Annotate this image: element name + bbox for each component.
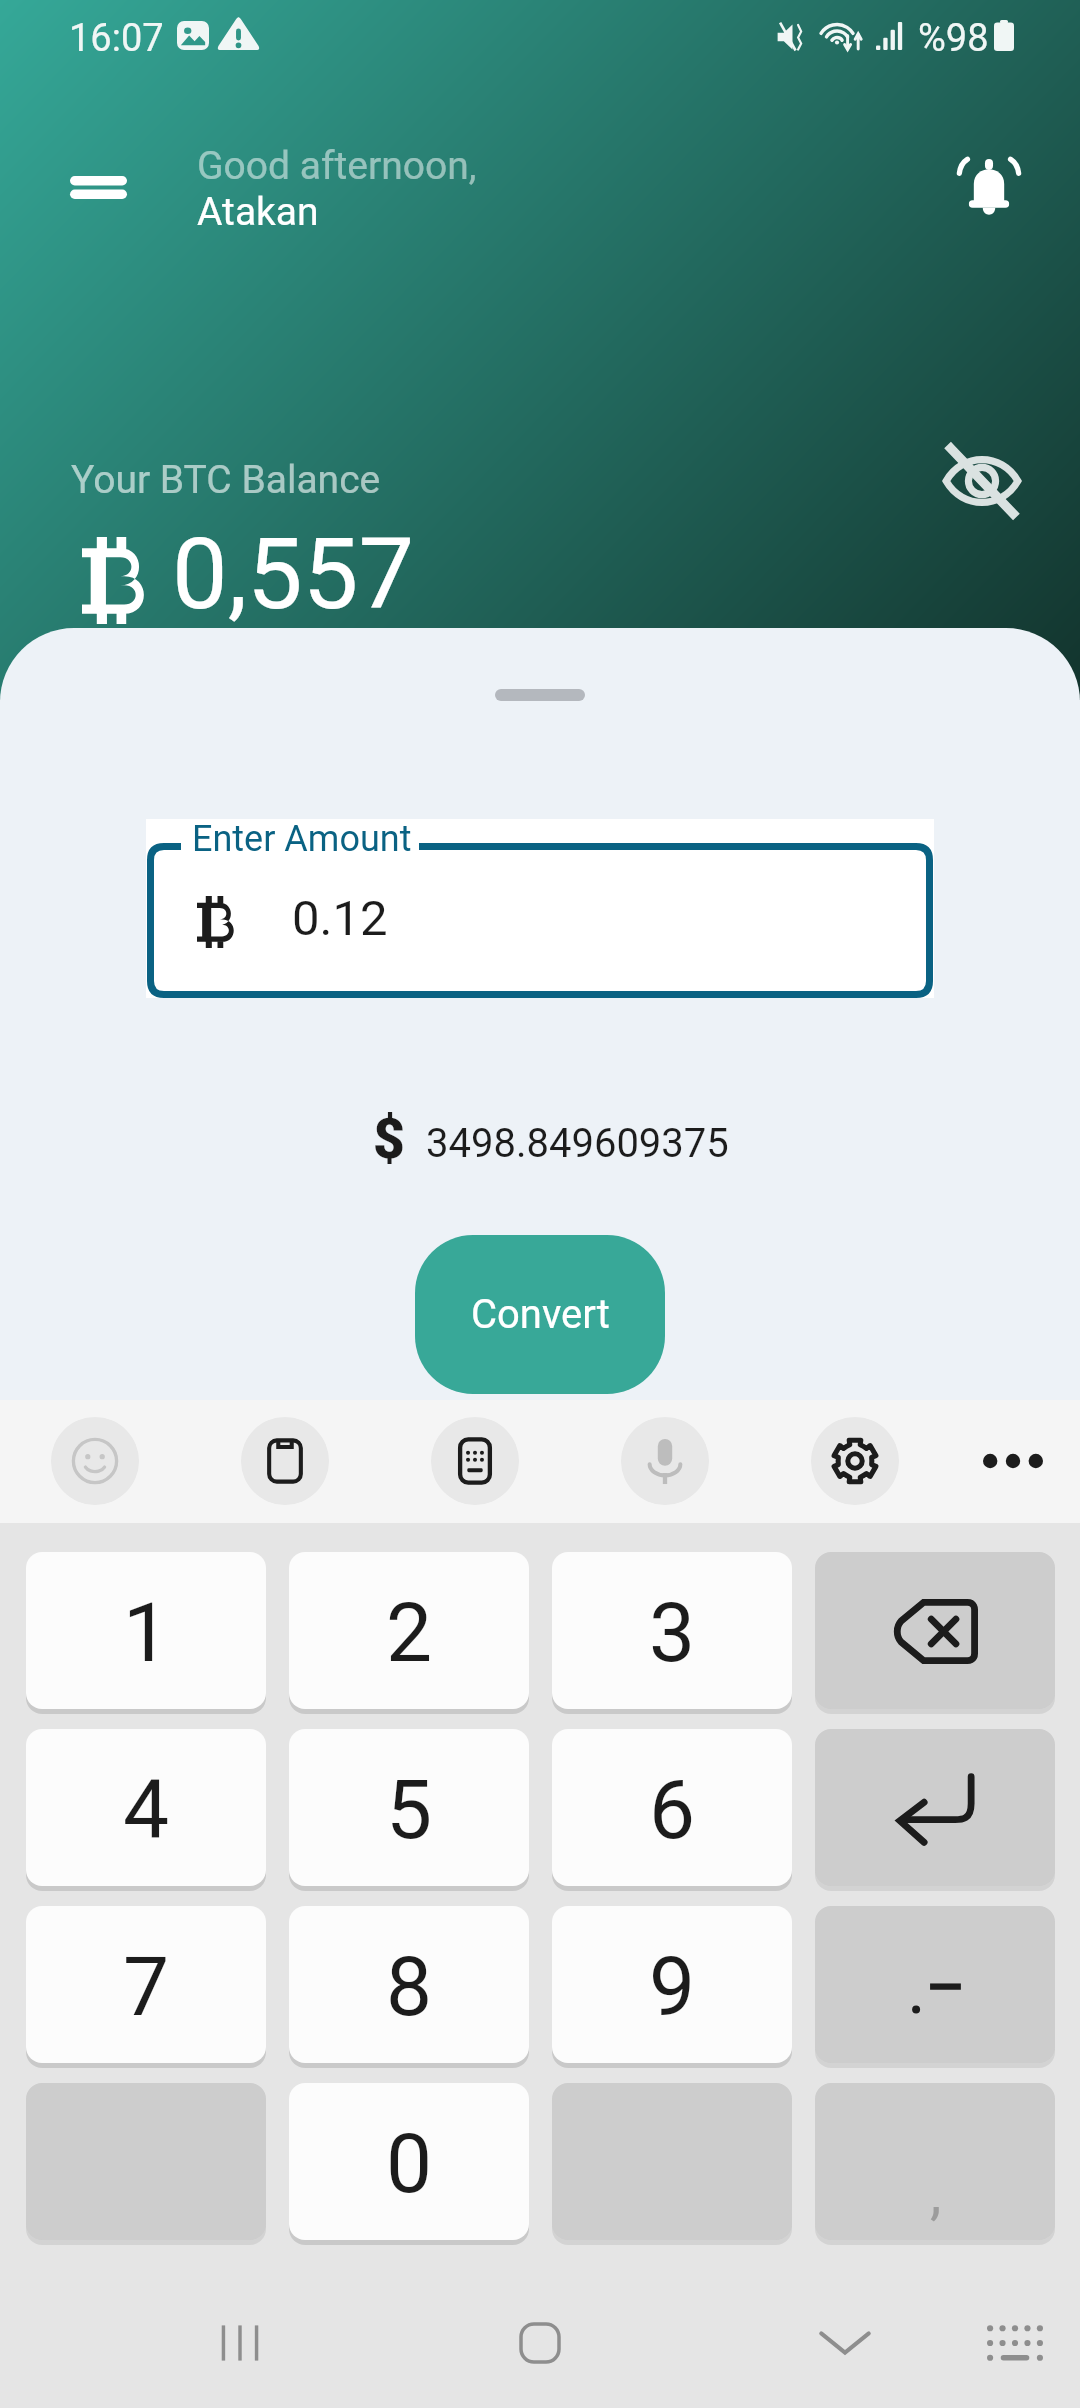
button[interactable]: Keyboard modes <box>431 1417 519 1505</box>
staticText: Convert <box>471 1291 610 1338</box>
button[interactable]: Notifications <box>943 142 1035 232</box>
staticText: 4 <box>123 1762 170 1858</box>
staticText: 1 <box>123 1585 170 1681</box>
staticText: 3 <box>649 1585 696 1681</box>
staticText: 6 <box>649 1762 696 1858</box>
button[interactable]: 4 <box>26 1729 266 1886</box>
staticText: , <box>930 2159 942 2227</box>
staticText: Atakan <box>197 189 319 235</box>
button[interactable]: 2 <box>289 1552 529 1709</box>
button[interactable]: Switch keyboard <box>970 2298 1060 2388</box>
button[interactable]: 1 <box>26 1552 266 1709</box>
staticText: 16:07 <box>69 16 164 61</box>
staticText: 9 <box>649 1939 696 2035</box>
button[interactable]: Home <box>495 2298 585 2388</box>
button[interactable]: Backspace <box>815 1552 1055 1709</box>
button[interactable]: Hide keyboard <box>800 2298 890 2388</box>
button[interactable]: Voice input <box>621 1417 709 1505</box>
button[interactable]: Hide balance <box>935 440 1029 522</box>
button[interactable]: Dot and dash <box>815 1906 1055 2063</box>
staticText: 0 <box>386 2116 433 2212</box>
button[interactable]: 3 <box>552 1552 792 1709</box>
button[interactable]: 5 <box>289 1729 529 1886</box>
staticText: %98 <box>918 16 989 61</box>
staticText: 7 <box>123 1939 170 2035</box>
button[interactable]: 7 <box>26 1906 266 2063</box>
button[interactable]: Recents <box>195 2298 285 2388</box>
staticText: Good afternoon, <box>197 143 477 189</box>
staticText: $ <box>373 1107 405 1171</box>
button[interactable]: Enter <box>815 1729 1055 1886</box>
button[interactable]: More options <box>969 1417 1057 1505</box>
button[interactable]: Keyboard settings <box>811 1417 899 1505</box>
button[interactable]: Emoji <box>51 1417 139 1505</box>
button[interactable]: Open menu <box>42 143 154 231</box>
button[interactable]: 0 <box>289 2083 529 2240</box>
staticText: 2 <box>386 1585 433 1681</box>
staticText: 8 <box>386 1939 433 2035</box>
staticText: 0,557 <box>172 516 415 632</box>
button[interactable]: 6 <box>552 1729 792 1886</box>
staticText: 0.12 <box>292 890 388 947</box>
staticText: Enter Amount <box>192 818 412 860</box>
staticText: 3498.849609375 <box>426 1120 729 1167</box>
staticText: Your BTC Balance <box>71 457 381 503</box>
button[interactable]: Clipboard <box>241 1417 329 1505</box>
staticText: 5 <box>386 1762 433 1858</box>
button[interactable]: 9 <box>552 1906 792 2063</box>
button[interactable]: 8 <box>289 1906 529 2063</box>
button[interactable]: Convert <box>415 1235 665 1394</box>
